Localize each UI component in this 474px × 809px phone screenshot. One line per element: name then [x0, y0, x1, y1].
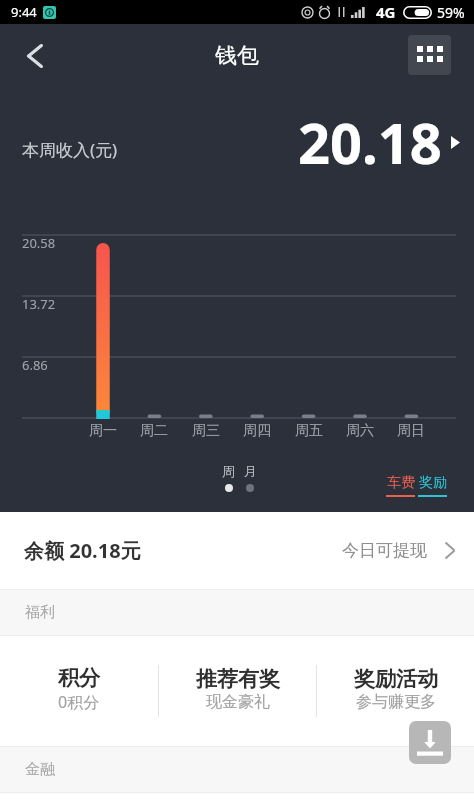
button[interactable]: 积分 [0, 636, 158, 746]
staticText: 9:44 [11, 3, 37, 21]
staticText: 福利 [25, 603, 55, 622]
button[interactable]: Back [11, 32, 59, 80]
staticText: 周日 [397, 422, 425, 440]
staticText: 周四 [243, 422, 271, 440]
staticText: 车费 [387, 474, 415, 492]
staticText: 59% [437, 3, 465, 22]
staticText: 推荐有奖 [196, 666, 280, 692]
staticText: 4G [376, 2, 396, 22]
staticText: 周二 [140, 422, 168, 440]
staticText: 周五 [295, 422, 323, 440]
staticText: 13.72 [22, 295, 56, 313]
button[interactable]: Apps [408, 35, 451, 75]
staticText: 奖励 [419, 474, 447, 492]
staticText: 周六 [346, 422, 374, 440]
staticText: 6.86 [22, 356, 48, 374]
staticText: 周三 [192, 422, 220, 440]
button[interactable]: 奖励活动 [317, 636, 474, 746]
staticText: 余额 20.18元 [24, 537, 141, 564]
staticText: 周 [222, 463, 235, 479]
staticText: 0积分 [58, 691, 100, 713]
staticText: 今日可提现 [342, 540, 427, 561]
button[interactable]: 余额 20.18元 [0, 512, 474, 589]
staticText: 现金豪礼 [206, 692, 270, 712]
staticText: 20.18 [298, 104, 442, 180]
staticText: 钱包 [215, 42, 259, 70]
staticText: 20.58 [22, 234, 56, 252]
staticText: 参与赚更多 [356, 692, 436, 712]
staticText: 奖励活动 [354, 666, 438, 692]
staticText: 周一 [89, 422, 117, 440]
staticText: 积分 [58, 665, 100, 691]
staticText: 本周收入(元) [22, 138, 118, 161]
staticText: 月 [244, 463, 257, 479]
staticText: 金融 [25, 760, 55, 779]
button[interactable]: Download [409, 721, 451, 764]
button[interactable]: 推荐有奖 [159, 636, 316, 746]
